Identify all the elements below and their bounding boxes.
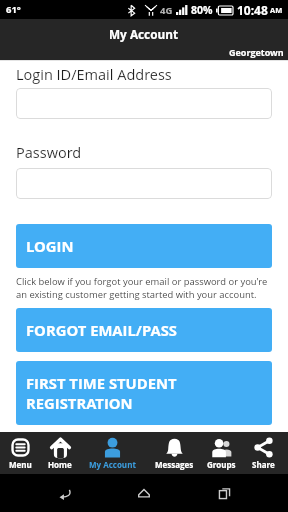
- staticText: Georgetown: [229, 46, 284, 58]
- staticText: Messages: [155, 459, 194, 470]
- button[interactable]: Share: [239, 432, 288, 474]
- staticText: AM: [270, 5, 283, 15]
- staticText: My Account: [89, 459, 136, 470]
- staticText: Menu: [9, 459, 32, 470]
- button[interactable]: FORGOT EMAIL/PASS: [16, 308, 272, 352]
- staticText: Click below if you forgot your email or …: [16, 275, 272, 301]
- button[interactable]: [16, 168, 272, 199]
- staticText: 10:48: [237, 2, 268, 18]
- staticText: 80%: [191, 3, 213, 17]
- button[interactable]: Home: [41, 432, 79, 474]
- staticText: 4G: [160, 4, 173, 17]
- staticText: FIRST TIME STUDENT REGISTRATION: [26, 373, 177, 413]
- button[interactable]: Home: [129, 478, 159, 508]
- staticText: LOGIN: [26, 236, 74, 256]
- button[interactable]: Recent apps: [209, 478, 239, 508]
- button[interactable]: [16, 88, 272, 119]
- staticText: My Account: [109, 26, 179, 42]
- staticText: Login ID/Email Address: [16, 65, 172, 85]
- button[interactable]: Back: [50, 478, 80, 508]
- staticText: Home: [48, 459, 72, 470]
- button[interactable]: LOGIN: [16, 224, 272, 268]
- button[interactable]: My Account: [79, 432, 145, 474]
- staticText: Share: [252, 459, 275, 470]
- button[interactable]: Messages: [145, 432, 203, 474]
- button[interactable]: Groups: [203, 432, 239, 474]
- button[interactable]: FIRST TIME STUDENT REGISTRATION: [16, 361, 272, 425]
- staticText: FORGOT EMAIL/PASS: [26, 320, 178, 340]
- staticText: Groups: [207, 459, 236, 470]
- staticText: Password: [16, 143, 82, 163]
- button[interactable]: Menu: [0, 432, 41, 474]
- staticText: 61°: [6, 3, 21, 16]
